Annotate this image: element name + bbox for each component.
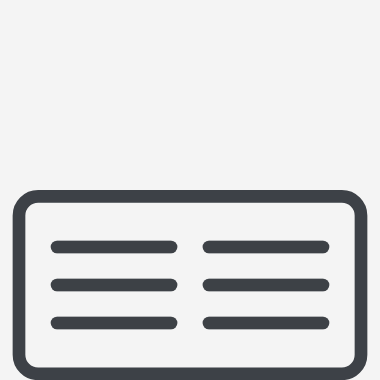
button[interactable]: Show keyboard [0,0,380,380]
